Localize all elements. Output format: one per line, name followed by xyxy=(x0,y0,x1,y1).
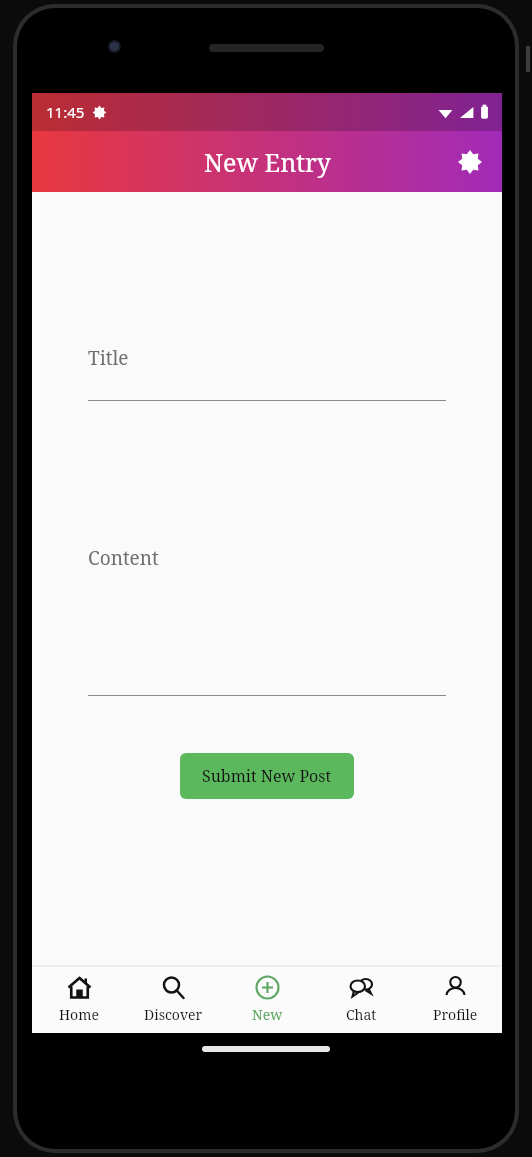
button[interactable]: New xyxy=(220,966,314,1033)
staticText: Content xyxy=(88,545,159,571)
button[interactable]: Chat xyxy=(314,966,408,1033)
staticText: Title xyxy=(88,345,129,371)
staticText: Discover xyxy=(144,1005,203,1024)
staticText: New xyxy=(252,1005,283,1024)
button[interactable]: Home xyxy=(32,966,126,1033)
staticText: Profile xyxy=(433,1005,478,1024)
button[interactable]: Settings xyxy=(448,140,492,184)
button[interactable]: Submit New Post xyxy=(180,753,354,799)
staticText: New Entry xyxy=(204,145,331,179)
staticText: Chat xyxy=(346,1005,377,1024)
staticText: Home xyxy=(59,1005,99,1024)
button[interactable]: Content xyxy=(88,545,446,696)
button[interactable]: Profile xyxy=(408,966,502,1033)
button[interactable]: Title xyxy=(88,345,446,401)
staticText: Submit New Post xyxy=(202,765,332,787)
staticText: 11:45 xyxy=(46,102,85,122)
button[interactable]: Discover xyxy=(126,966,220,1033)
